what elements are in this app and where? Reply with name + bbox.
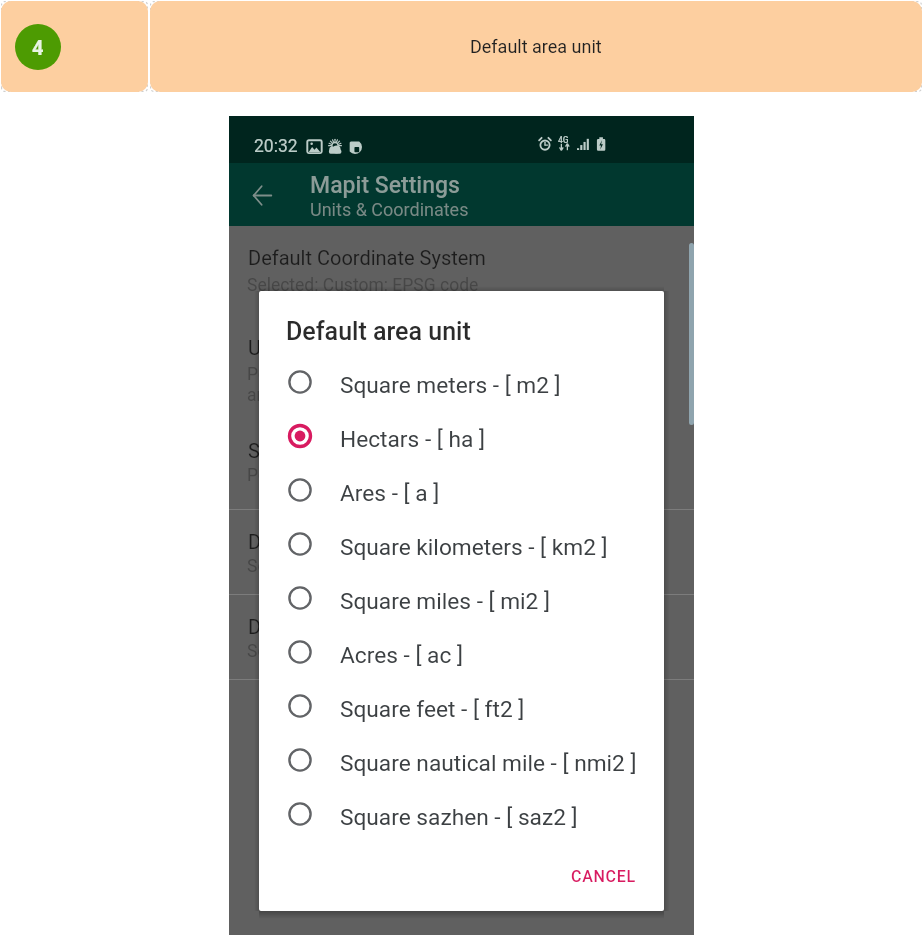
button[interactable]	[259, 733, 664, 787]
staticText: Units & Coordinates	[310, 199, 469, 220]
staticText: 4G	[558, 135, 569, 145]
staticText: Acres - [ ac ]	[340, 642, 463, 669]
staticText: and area units	[247, 385, 358, 406]
staticText: Square meters - [ m2 ]	[340, 372, 561, 399]
staticText: Square kilometers - [ km2 ]	[340, 534, 608, 561]
staticText: Default area unit	[248, 615, 395, 638]
button[interactable]	[259, 355, 664, 409]
staticText: Square nautical mile - [ nmi2 ]	[340, 750, 637, 777]
button[interactable]	[259, 679, 664, 733]
button[interactable]	[229, 595, 694, 679]
button[interactable]	[259, 409, 664, 463]
staticText: Selected: Meters	[247, 556, 378, 577]
staticText: 20:32	[254, 136, 298, 157]
staticText: Default area unit	[286, 317, 471, 346]
staticText: Square feet - [ ft2 ]	[340, 696, 525, 723]
staticText: Hectars - [ ha ]	[340, 426, 485, 453]
staticText: Scale bar	[248, 439, 331, 462]
staticText: CANCEL	[571, 867, 636, 886]
button[interactable]: Step 4	[15, 24, 61, 70]
staticText: Square miles - [ mi2 ]	[340, 588, 550, 615]
button[interactable]	[259, 625, 664, 679]
staticText: Default area unit	[470, 36, 602, 57]
button[interactable]	[259, 571, 664, 625]
staticText: Position, distance	[247, 364, 386, 385]
button[interactable]	[229, 312, 694, 416]
staticText: Selected: Hectars	[247, 641, 384, 662]
button[interactable]	[259, 787, 664, 841]
button[interactable]: CANCEL	[559, 857, 648, 896]
button[interactable]: Back	[242, 175, 282, 215]
staticText: Position of scale bar	[247, 465, 407, 486]
button[interactable]	[229, 510, 694, 594]
staticText: Square sazhen - [ saz2 ]	[340, 804, 578, 831]
staticText: 4	[32, 36, 44, 59]
button[interactable]	[259, 517, 664, 571]
staticText: Default linear unit	[248, 530, 405, 553]
button[interactable]	[229, 416, 694, 509]
staticText: Mapit Settings	[310, 172, 460, 199]
button[interactable]	[229, 226, 694, 312]
staticText: Ares - [ a ]	[340, 480, 440, 507]
staticText: Units	[248, 336, 294, 359]
staticText: Default Coordinate System	[248, 246, 486, 269]
staticText: Selected: Custom: EPSG code	[247, 275, 479, 296]
button[interactable]	[259, 463, 664, 517]
